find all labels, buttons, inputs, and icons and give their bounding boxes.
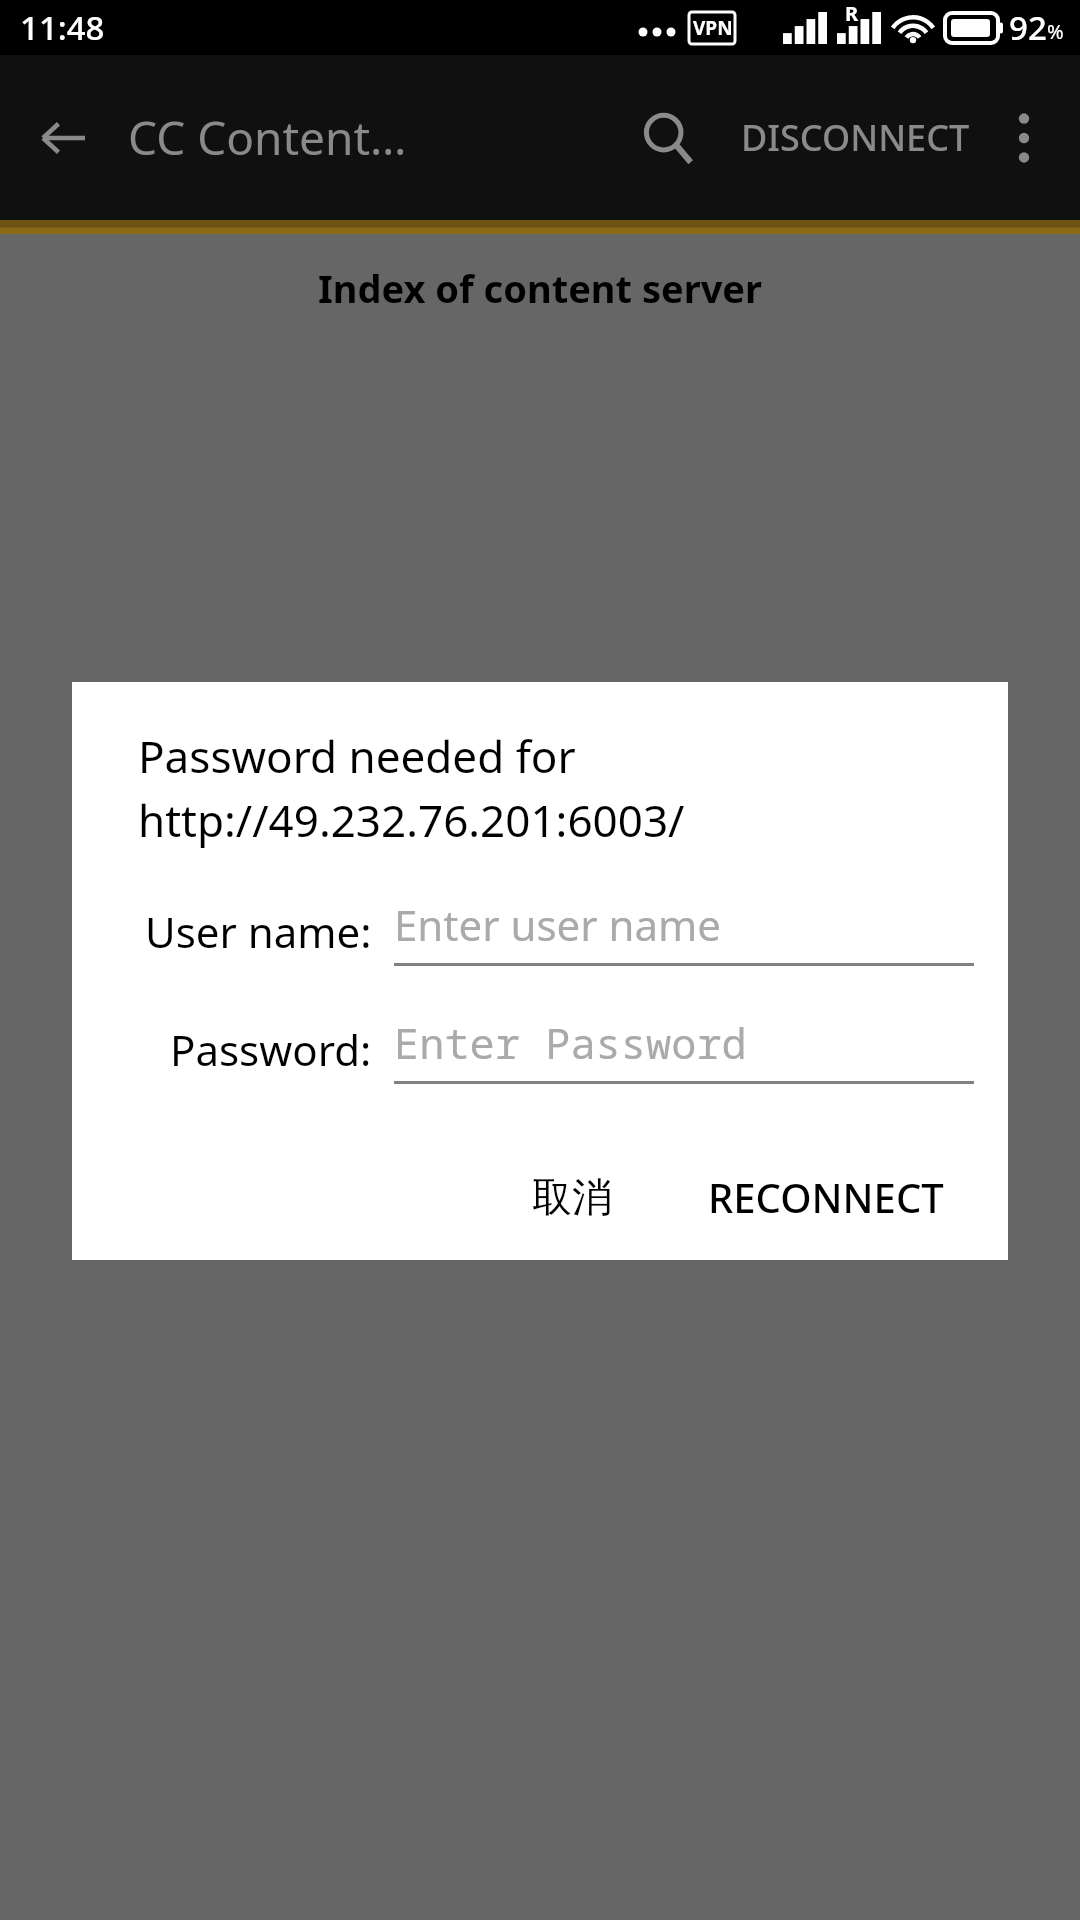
staticText: R bbox=[845, 0, 859, 27]
button[interactable]: Enter user name bbox=[394, 896, 974, 966]
staticText: DISCONNECT bbox=[741, 113, 970, 162]
staticText: % bbox=[1047, 18, 1064, 45]
staticText: Enter user name bbox=[394, 896, 721, 953]
button[interactable]: 取消 bbox=[508, 1158, 636, 1236]
staticText: Password needed for bbox=[138, 726, 576, 786]
button[interactable]: More options bbox=[984, 98, 1064, 178]
button[interactable]: Search bbox=[625, 95, 711, 181]
staticText: 92 bbox=[1009, 5, 1047, 50]
staticText: CC Content… bbox=[128, 106, 407, 169]
staticText: 取消 bbox=[532, 1172, 612, 1222]
button[interactable]: Enter Password bbox=[394, 1014, 974, 1084]
staticText: Password: bbox=[170, 1021, 372, 1078]
staticText: 11:48 bbox=[20, 5, 105, 50]
staticText: VPN bbox=[693, 15, 733, 41]
staticText: Enter Password bbox=[394, 1014, 747, 1071]
button[interactable]: DISCONNECT bbox=[727, 99, 984, 176]
staticText: Index of content server bbox=[0, 262, 1080, 314]
staticText: User name: bbox=[145, 903, 372, 960]
staticText: RECONNECT bbox=[708, 1170, 944, 1224]
button[interactable]: RECONNECT bbox=[684, 1156, 968, 1238]
staticText: http://49.232.76.201:6003/ bbox=[138, 790, 685, 850]
button[interactable]: Back bbox=[28, 102, 100, 174]
